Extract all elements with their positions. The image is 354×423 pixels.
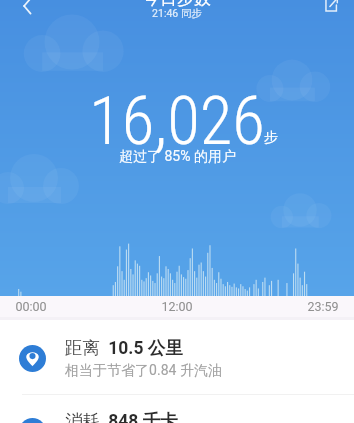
staticText: 00:00	[15, 299, 47, 314]
button[interactable]: Share	[308, 0, 354, 17]
staticText: 距离	[65, 337, 100, 359]
button[interactable]: Back	[0, 0, 54, 19]
staticText: 16,026	[89, 82, 265, 161]
staticText: 相当于节省了0.84 升汽油	[65, 362, 222, 380]
staticText: 超过了 85% 的用户	[119, 148, 236, 166]
staticText: 今日步数	[143, 0, 211, 9]
staticText: 12:00	[161, 299, 193, 314]
button[interactable]: 距离	[0, 322, 354, 394]
staticText: 23:59	[307, 299, 339, 314]
staticText: 消耗	[65, 410, 100, 423]
staticText: 21:46 同步	[152, 7, 202, 20]
staticText: 步	[264, 129, 278, 147]
button[interactable]: 消耗	[0, 395, 354, 423]
staticText: 848 千卡	[108, 410, 178, 423]
staticText: 10.5 公里	[108, 337, 183, 359]
